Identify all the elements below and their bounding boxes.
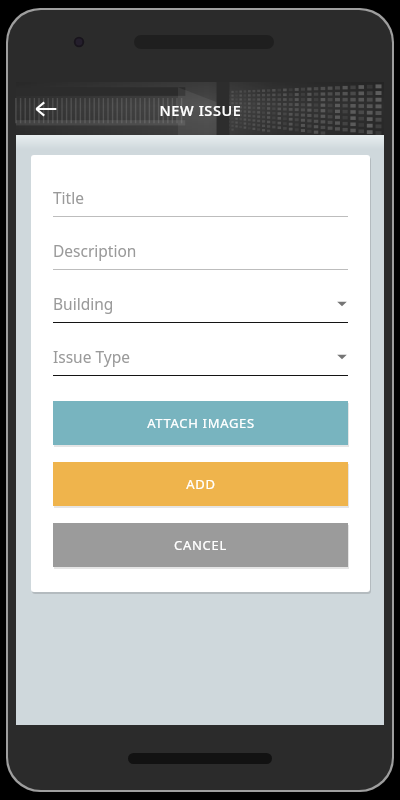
staticText: ATTACH IMAGES [147,414,255,432]
button[interactable]: ATTACH IMAGES [53,401,348,445]
button[interactable]: Title [53,184,348,217]
staticText: Title [53,187,348,208]
staticText: Description [53,240,348,261]
staticText: Building [53,293,336,314]
button[interactable]: Issue Type [53,343,348,376]
button[interactable]: Description [53,237,348,270]
button[interactable]: ADD [53,462,348,506]
staticText: CANCEL [174,536,227,554]
staticText: ADD [186,475,216,493]
button[interactable]: CANCEL [53,523,348,567]
button[interactable]: Building [53,290,348,323]
staticText: Issue Type [53,346,336,367]
button[interactable]: Back [24,87,68,131]
staticText: NEW ISSUE [159,100,242,120]
